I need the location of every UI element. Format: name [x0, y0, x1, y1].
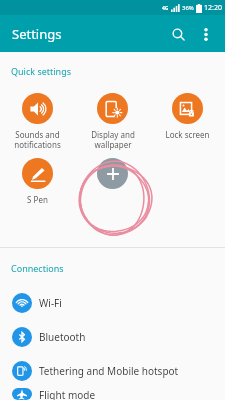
- button[interactable]: Tethering and Mobile hotspot: [0, 354, 225, 388]
- staticText: S Pen: [27, 194, 48, 205]
- staticText: 12:20: [204, 3, 222, 13]
- staticText: 36%: [182, 4, 194, 12]
- staticText: Sounds and notifications: [14, 129, 61, 150]
- button[interactable]: Sounds and notifications: [0, 93, 75, 150]
- button[interactable]: Bluetooth: [0, 320, 225, 354]
- staticText: Lock screen: [165, 129, 210, 140]
- button[interactable]: Lock screen: [150, 93, 225, 140]
- button[interactable]: Wi-Fi: [0, 286, 225, 320]
- staticText: 4G: [162, 5, 169, 12]
- staticText: Wi-Fi: [39, 296, 62, 310]
- button[interactable]: Search: [163, 19, 193, 49]
- button[interactable]: S Pen: [0, 158, 75, 205]
- staticText: Tethering and Mobile hotspot: [39, 364, 179, 378]
- staticText: Display and wallpaper: [91, 129, 135, 150]
- staticText: Settings: [12, 25, 62, 43]
- button[interactable]: Flight mode: [0, 388, 225, 400]
- staticText: Connections: [11, 262, 64, 274]
- staticText: Quick settings: [11, 65, 71, 77]
- staticText: Bluetooth: [39, 330, 86, 344]
- button[interactable]: Display and wallpaper: [75, 93, 150, 150]
- staticText: Flight mode: [39, 388, 96, 400]
- button[interactable]: Add quick setting: [97, 158, 128, 189]
- button[interactable]: More options: [193, 21, 219, 47]
